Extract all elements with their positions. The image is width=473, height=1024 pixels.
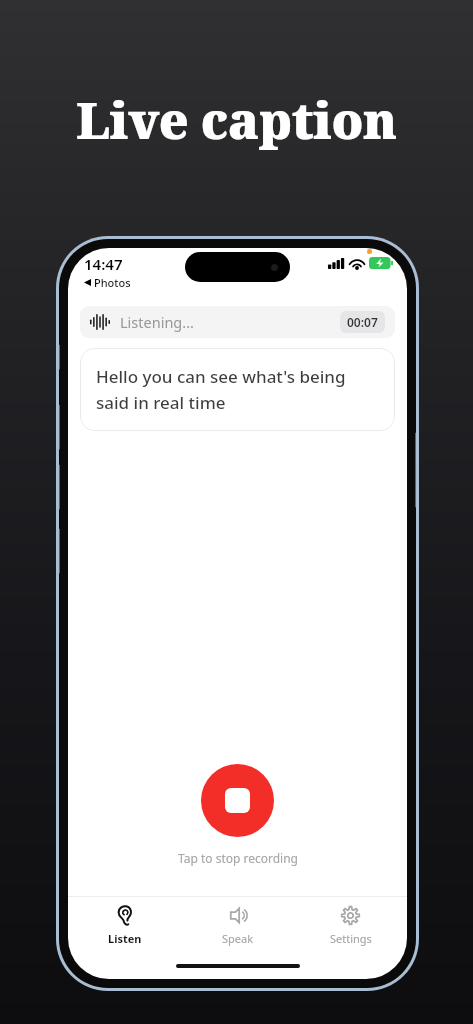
staticText: 14:47 [84, 254, 123, 274]
staticText: Speak [222, 931, 254, 946]
button[interactable]: Stop recording [201, 764, 274, 837]
staticText: Live caption [76, 86, 397, 154]
staticText: Photos [94, 275, 131, 290]
button[interactable]: Speak [181, 897, 294, 953]
staticText: Tap to stop recording [178, 850, 298, 866]
staticText: 00:07 [347, 314, 378, 330]
button[interactable]: Listen [68, 897, 181, 953]
button[interactable]: Hello you can see what's being said in r… [80, 348, 395, 431]
staticText: Listen [108, 931, 142, 946]
staticText: Hello you can see what's being said in r… [96, 365, 379, 414]
staticText: Settings [330, 931, 372, 946]
button[interactable]: Listening... [80, 306, 395, 338]
button[interactable]: Settings [294, 897, 407, 953]
staticText: Listening... [120, 312, 194, 332]
